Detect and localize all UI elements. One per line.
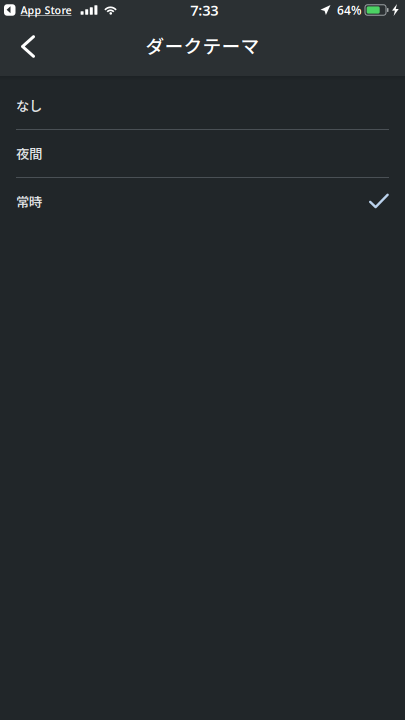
button[interactable]: なし (0, 82, 405, 130)
staticText: App Store (20, 3, 71, 17)
staticText: 64% (337, 2, 362, 18)
staticText: 常時 (16, 192, 42, 211)
staticText: 夜間 (16, 144, 42, 163)
staticText: なし (16, 96, 42, 115)
staticText: ダークテーマ (145, 31, 259, 58)
staticText: 7:33 (190, 0, 218, 20)
button[interactable]: Back (3, 21, 53, 71)
button[interactable]: 常時 (0, 178, 405, 226)
button[interactable]: 夜間 (0, 130, 405, 178)
